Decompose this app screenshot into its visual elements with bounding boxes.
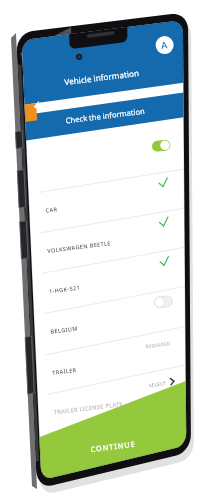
button[interactable]: Vehicle information phone mockup (0, 0, 209, 500)
